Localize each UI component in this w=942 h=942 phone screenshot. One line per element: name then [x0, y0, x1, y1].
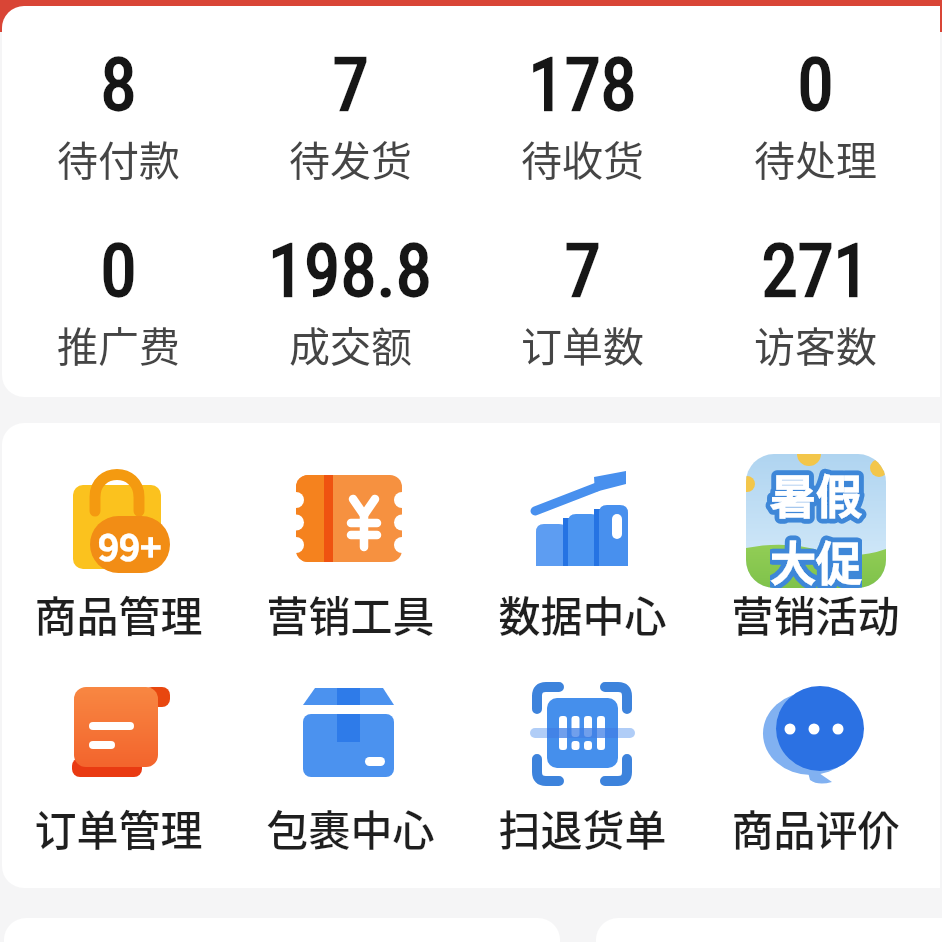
staticText: 营销活动 — [731, 583, 900, 644]
staticText: 包裹中心 — [266, 797, 435, 858]
button[interactable]: 0 — [699, 42, 932, 187]
staticText: 178 — [528, 42, 637, 128]
staticText: 198.8 — [268, 228, 432, 314]
button[interactable]: 数据中心 — [466, 459, 699, 634]
button[interactable]: 暑假 — [699, 459, 932, 634]
staticText: 营销工具 — [266, 583, 435, 644]
staticText: 商品管理 — [34, 583, 203, 644]
staticText: 商品评价 — [731, 797, 900, 858]
staticText: 99+ — [98, 518, 162, 572]
button[interactable]: 扫退货单 — [466, 678, 699, 853]
button[interactable]: 7 — [466, 228, 699, 373]
staticText: 7 — [564, 228, 601, 314]
staticText: 0 — [797, 42, 834, 128]
button[interactable]: 7 — [234, 42, 466, 187]
staticText: 访客数 — [754, 314, 877, 373]
staticText: 待付款 — [57, 128, 180, 187]
button[interactable]: 178 — [466, 42, 699, 187]
button[interactable]: 订单管理 — [2, 678, 234, 853]
staticText: 推广费 — [57, 314, 180, 373]
staticText: 待发货 — [289, 128, 412, 187]
staticText: 成交额 — [289, 314, 412, 373]
button[interactable]: 271 — [699, 228, 932, 373]
staticText: 订单管理 — [34, 797, 203, 858]
staticText: 待收货 — [521, 128, 644, 187]
staticText: 暑假 — [770, 460, 862, 527]
button[interactable]: 营销工具 — [234, 459, 466, 634]
staticText: 数据中心 — [498, 583, 667, 644]
staticText: 待处理 — [754, 128, 877, 187]
staticText: 大促 — [770, 527, 862, 588]
button[interactable]: 包裹中心 — [234, 678, 466, 853]
staticText: 订单数 — [521, 314, 644, 373]
button[interactable]: 商品评价 — [699, 678, 932, 853]
button[interactable]: 0 — [2, 228, 234, 373]
button[interactable]: 99+ — [2, 459, 234, 634]
staticText: 0 — [100, 228, 137, 314]
staticText: 扫退货单 — [498, 797, 667, 858]
button[interactable]: 198.8 — [234, 228, 466, 373]
button[interactable]: 8 — [2, 42, 234, 187]
staticText: 暑假 — [770, 460, 862, 527]
staticText: 271 — [761, 228, 870, 314]
staticText: 7 — [332, 42, 369, 128]
staticText: 大促 — [770, 527, 862, 588]
staticText: 8 — [100, 42, 137, 128]
